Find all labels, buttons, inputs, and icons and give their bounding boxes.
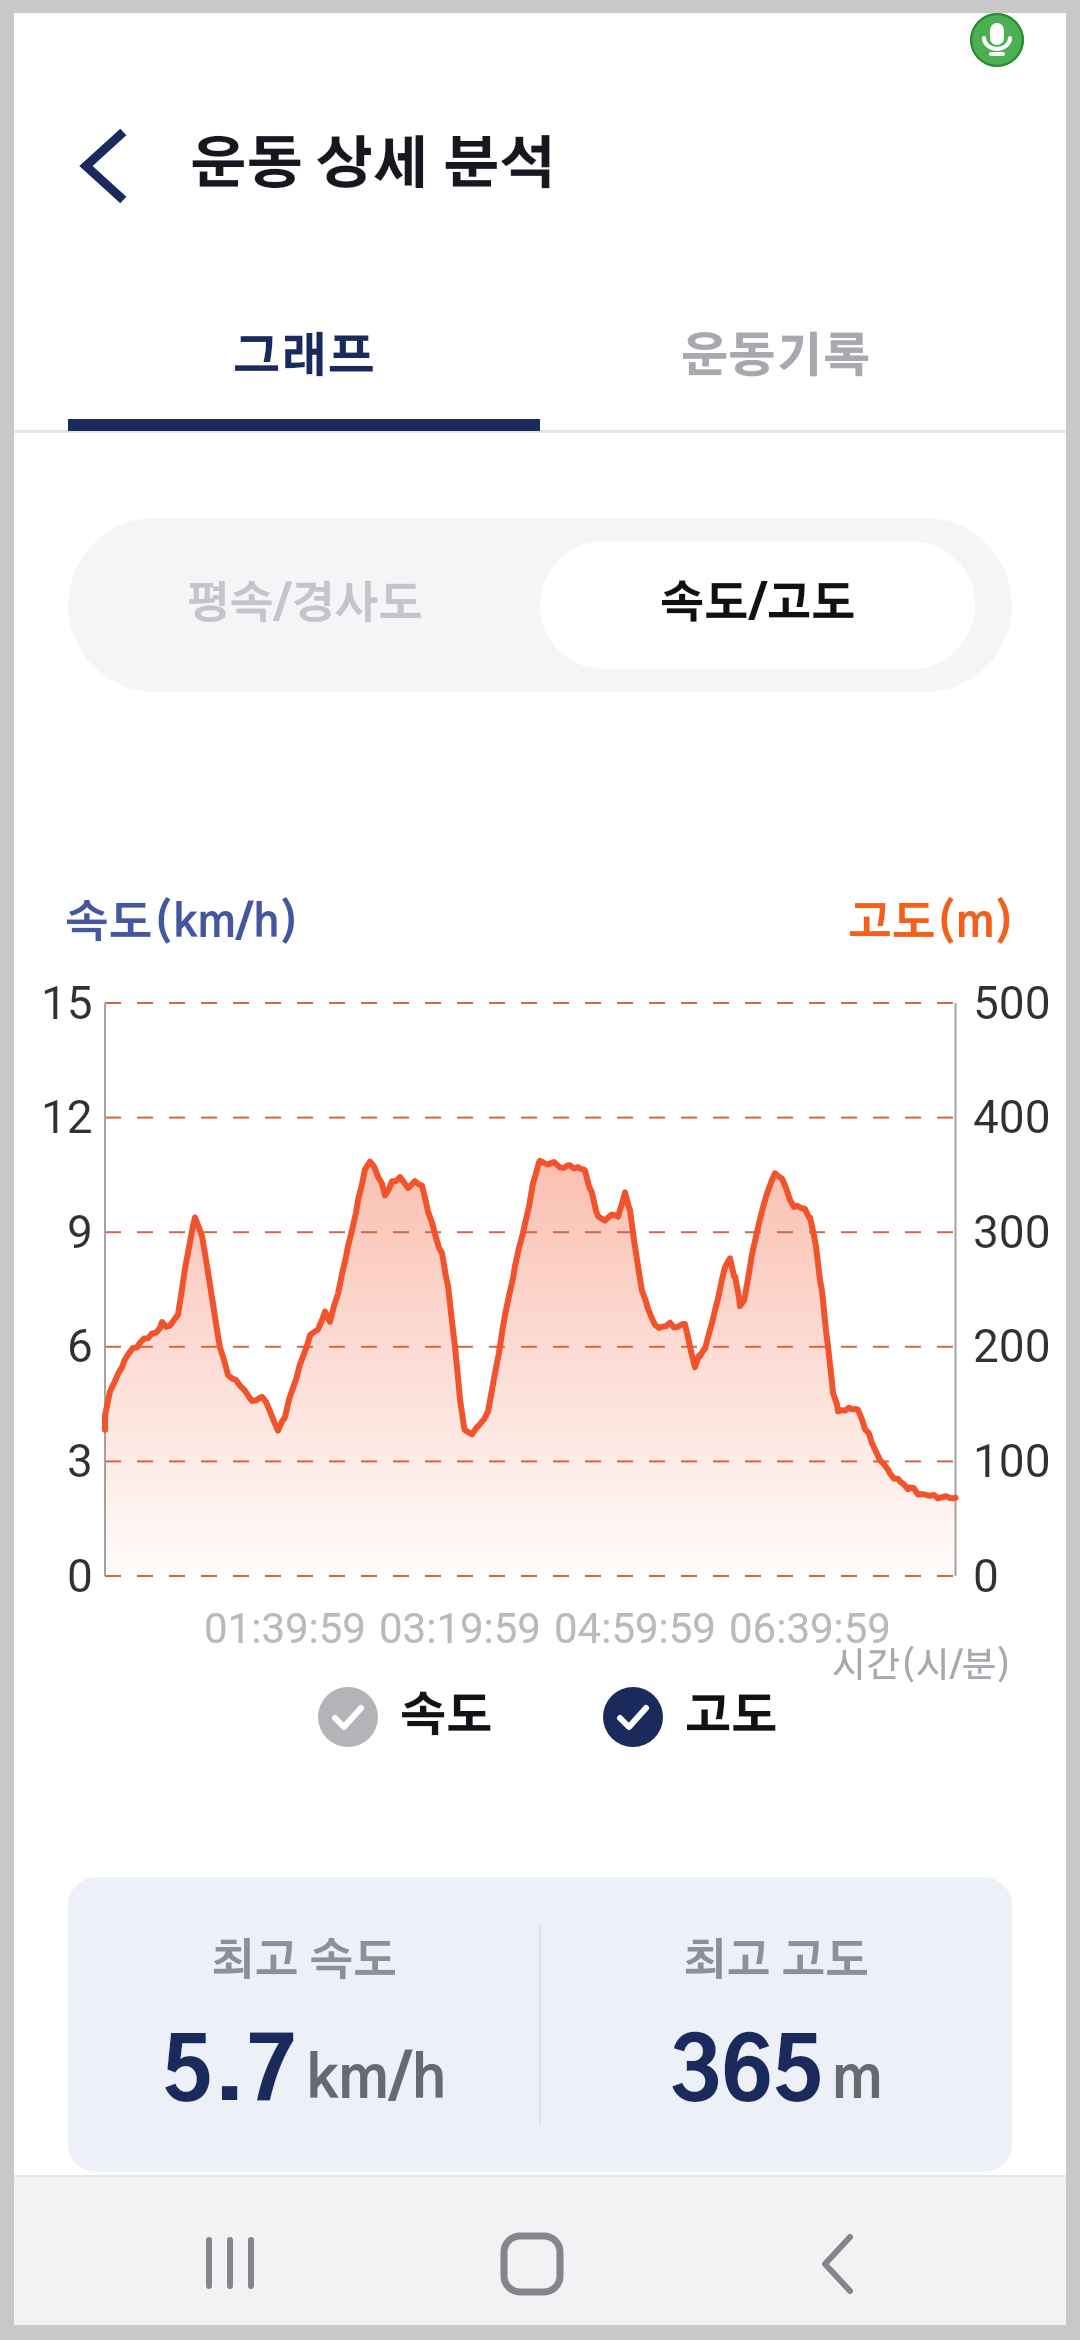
staticText: 속도(km/h) bbox=[65, 902, 300, 946]
button[interactable] bbox=[970, 13, 1024, 67]
staticText: km/h bbox=[306, 2052, 447, 2110]
staticText: 고도(m) bbox=[848, 902, 1015, 946]
staticText: 03:19:59 bbox=[379, 1604, 541, 1653]
staticText: 9 bbox=[67, 1205, 93, 1259]
staticText: 0 bbox=[973, 1549, 999, 1603]
staticText: 운동기록 bbox=[681, 335, 871, 382]
staticText: 평속/경사도 bbox=[186, 583, 423, 627]
staticText: 100 bbox=[973, 1434, 1051, 1488]
button[interactable]: 속도 bbox=[318, 1686, 568, 1748]
staticText: 300 bbox=[973, 1205, 1051, 1259]
staticText: 시간(시/분) bbox=[832, 1649, 1013, 1684]
staticText: 365 bbox=[670, 2031, 824, 2117]
staticText: 고도 bbox=[685, 1694, 778, 1740]
staticText: 0 bbox=[67, 1549, 93, 1603]
button[interactable]: 고도 bbox=[603, 1686, 853, 1748]
button[interactable]: 평속/경사도 bbox=[68, 518, 540, 692]
button[interactable]: 그래프 bbox=[68, 295, 540, 421]
staticText: 그래프 bbox=[233, 335, 376, 382]
staticText: 04:59:59 bbox=[554, 1604, 716, 1653]
staticText: 15 bbox=[41, 976, 93, 1030]
staticText: 500 bbox=[973, 976, 1051, 1030]
button[interactable] bbox=[180, 2225, 280, 2303]
staticText: 400 bbox=[973, 1090, 1051, 1144]
button[interactable] bbox=[482, 2225, 582, 2303]
staticText: 속도 bbox=[400, 1694, 493, 1740]
button[interactable] bbox=[72, 121, 136, 211]
button[interactable] bbox=[540, 541, 975, 669]
staticText: 최고 고도 bbox=[683, 1940, 870, 1984]
staticText: 6 bbox=[67, 1319, 93, 1373]
staticText: 5.7 bbox=[162, 2031, 298, 2117]
button[interactable]: 운동기록 bbox=[540, 295, 1012, 421]
button[interactable] bbox=[788, 2225, 888, 2303]
staticText: 200 bbox=[973, 1319, 1051, 1373]
staticText: 06:39:59 bbox=[729, 1604, 891, 1653]
staticText: m bbox=[832, 2052, 883, 2110]
staticText: 속도/고도 bbox=[660, 583, 856, 627]
staticText: 01:39:59 bbox=[204, 1604, 366, 1653]
staticText: 최고 속도 bbox=[211, 1940, 398, 1984]
staticText: 12 bbox=[41, 1090, 93, 1144]
staticText: 운동 상세 분석 bbox=[190, 138, 556, 194]
staticText: 3 bbox=[67, 1434, 93, 1488]
